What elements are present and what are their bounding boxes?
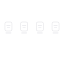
- button[interactable]: [5, 22, 12, 33]
- button[interactable]: [21, 22, 28, 33]
- button[interactable]: [36, 22, 43, 33]
- button[interactable]: [52, 22, 59, 33]
